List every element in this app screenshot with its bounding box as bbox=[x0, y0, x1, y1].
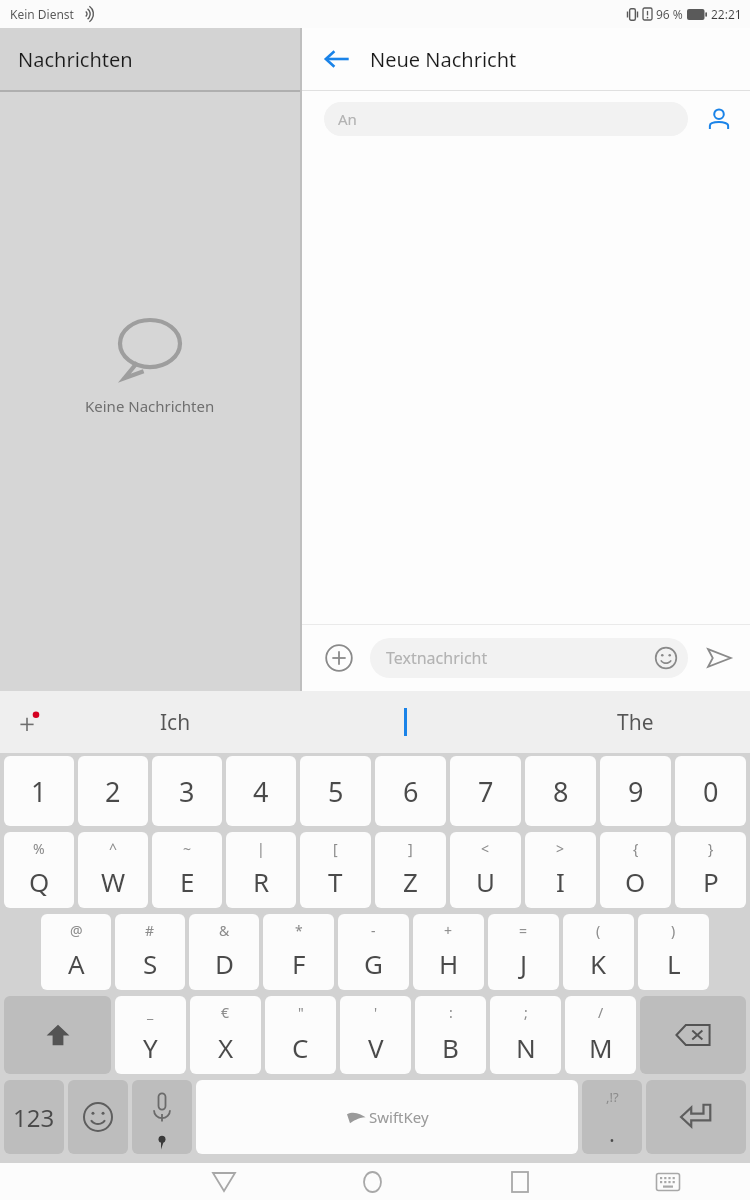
button[interactable]: Q bbox=[4, 832, 74, 908]
staticText: 9 bbox=[628, 773, 644, 810]
staticText: E bbox=[180, 864, 195, 899]
button[interactable]: B bbox=[415, 996, 486, 1074]
staticText: L bbox=[667, 946, 681, 981]
staticText: 1 bbox=[31, 773, 47, 810]
staticText: Kein Dienst bbox=[10, 6, 74, 22]
staticText: " bbox=[298, 1003, 304, 1022]
staticText: W bbox=[101, 864, 126, 899]
button[interactable]: Home bbox=[298, 1163, 446, 1200]
staticText: U bbox=[476, 864, 496, 899]
button[interactable]: P bbox=[675, 832, 746, 908]
staticText: @ bbox=[70, 921, 83, 940]
button[interactable]: J bbox=[488, 914, 559, 990]
button[interactable]: 0 bbox=[675, 756, 746, 826]
button[interactable]: 4 bbox=[226, 756, 296, 826]
staticText: ] bbox=[408, 839, 413, 858]
button[interactable]: Period bbox=[582, 1080, 642, 1154]
staticText: P bbox=[703, 864, 719, 899]
staticText: & bbox=[219, 921, 230, 940]
button[interactable]: X bbox=[190, 996, 261, 1074]
staticText: ^ bbox=[109, 839, 118, 858]
button[interactable]: Emoji bbox=[652, 644, 680, 672]
staticText: D bbox=[215, 946, 234, 981]
button[interactable]: W bbox=[78, 832, 148, 908]
button[interactable]: Add attachment bbox=[322, 641, 356, 675]
staticText: / bbox=[598, 1003, 604, 1022]
staticText: ( bbox=[596, 921, 601, 940]
button[interactable]: 2 bbox=[78, 756, 148, 826]
button[interactable]: 6 bbox=[375, 756, 446, 826]
staticText: ,!? bbox=[606, 1088, 619, 1106]
button[interactable]: Hide keyboard bbox=[594, 1163, 742, 1200]
button[interactable]: Send bbox=[702, 641, 736, 675]
staticText: 96 % bbox=[656, 6, 683, 22]
button[interactable]: Choose contact bbox=[702, 102, 736, 136]
button[interactable]: 5 bbox=[300, 756, 371, 826]
button[interactable]: Ich bbox=[60, 691, 290, 753]
button[interactable]: E bbox=[152, 832, 222, 908]
staticText: H bbox=[439, 946, 459, 981]
button[interactable]: Emoji bbox=[68, 1080, 128, 1154]
button[interactable]: 7 bbox=[450, 756, 521, 826]
button[interactable]: Y bbox=[115, 996, 186, 1074]
button[interactable]: An bbox=[324, 102, 688, 136]
button[interactable] bbox=[290, 691, 520, 753]
staticText: ' bbox=[374, 1003, 378, 1022]
button[interactable]: Back bbox=[150, 1163, 298, 1200]
staticText: Y bbox=[143, 1030, 158, 1065]
button[interactable]: Space bbox=[196, 1080, 578, 1154]
button[interactable]: Toolbar bbox=[0, 691, 60, 753]
button[interactable]: L bbox=[638, 914, 709, 990]
button[interactable]: V bbox=[340, 996, 411, 1074]
staticText: 3 bbox=[179, 773, 195, 810]
button[interactable]: I bbox=[525, 832, 596, 908]
button[interactable]: N bbox=[490, 996, 561, 1074]
button[interactable]: K bbox=[563, 914, 634, 990]
button[interactable]: 123 bbox=[4, 1080, 64, 1154]
staticText: ) bbox=[671, 921, 676, 940]
staticText: > bbox=[556, 839, 565, 858]
staticText: # bbox=[145, 921, 155, 940]
button[interactable]: 1 bbox=[4, 756, 74, 826]
button[interactable]: O bbox=[600, 832, 671, 908]
staticText: Textnachricht bbox=[386, 647, 488, 669]
staticText: Neue Nachricht bbox=[370, 46, 517, 73]
staticText: M bbox=[589, 1030, 613, 1065]
staticText: - bbox=[371, 921, 376, 940]
button[interactable]: 8 bbox=[525, 756, 596, 826]
button[interactable]: shift bbox=[4, 996, 111, 1074]
staticText: Nachrichten bbox=[18, 46, 133, 73]
staticText: { bbox=[633, 839, 639, 858]
button[interactable]: Back bbox=[320, 42, 354, 76]
button[interactable]: A bbox=[41, 914, 111, 990]
button[interactable]: The bbox=[520, 691, 750, 753]
button[interactable]: Textnachricht bbox=[370, 638, 688, 678]
button[interactable]: F bbox=[263, 914, 334, 990]
staticText: 2 bbox=[105, 773, 121, 810]
staticText: | bbox=[257, 839, 265, 858]
button[interactable]: S bbox=[115, 914, 185, 990]
staticText: An bbox=[338, 109, 357, 129]
staticText: 22:21 bbox=[711, 6, 742, 22]
staticText: % bbox=[33, 839, 45, 858]
staticText: } bbox=[708, 839, 714, 858]
button[interactable]: 9 bbox=[600, 756, 671, 826]
button[interactable]: U bbox=[450, 832, 521, 908]
staticText: J bbox=[520, 946, 528, 981]
button[interactable]: Enter bbox=[646, 1080, 746, 1154]
button[interactable]: Back bbox=[302, 28, 750, 90]
staticText: A bbox=[68, 946, 85, 981]
button[interactable]: Voice input bbox=[132, 1080, 192, 1154]
button[interactable]: 3 bbox=[152, 756, 222, 826]
button[interactable]: D bbox=[189, 914, 259, 990]
button[interactable]: Z bbox=[375, 832, 446, 908]
button[interactable]: C bbox=[265, 996, 336, 1074]
staticText: I bbox=[556, 864, 565, 899]
button[interactable]: Recents bbox=[446, 1163, 594, 1200]
button[interactable]: H bbox=[413, 914, 484, 990]
button[interactable]: M bbox=[565, 996, 636, 1074]
button[interactable]: G bbox=[338, 914, 409, 990]
button[interactable]: del bbox=[640, 996, 746, 1074]
button[interactable]: R bbox=[226, 832, 296, 908]
button[interactable]: T bbox=[300, 832, 371, 908]
